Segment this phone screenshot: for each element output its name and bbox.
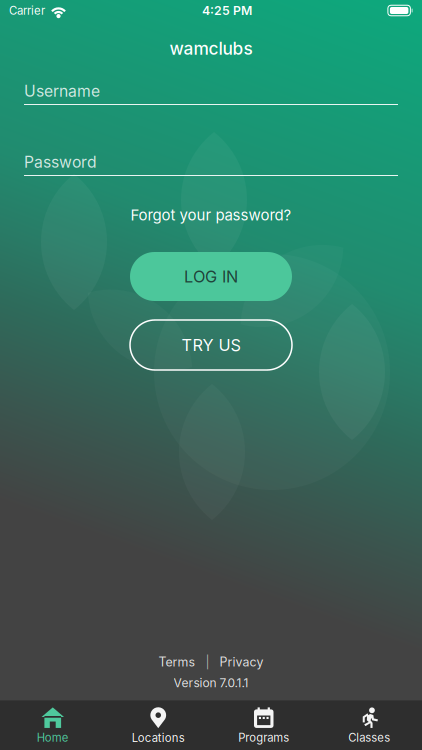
staticText: Version 7.0.1.1 [173, 676, 248, 690]
button[interactable]: Locations [105, 699, 211, 750]
button[interactable]: TRY US [130, 320, 292, 370]
button[interactable]: Privacy [215, 654, 267, 669]
staticText: Forgot your password? [130, 206, 291, 224]
staticText: Programs [238, 731, 289, 745]
staticText: wamclubs [169, 38, 252, 59]
staticText: Home [37, 731, 69, 745]
staticText: Privacy [219, 654, 263, 669]
staticText: 4:25 PM [202, 3, 252, 18]
button[interactable]: Home [0, 699, 105, 750]
staticText: Username [24, 81, 100, 100]
staticText: LOG IN [184, 267, 238, 286]
staticText: | [205, 654, 209, 669]
staticText: Carrier [9, 4, 45, 17]
button[interactable]: Terms [154, 654, 199, 669]
staticText: Password [24, 152, 97, 171]
button[interactable]: Classes [316, 699, 422, 750]
button[interactable]: Programs [211, 699, 316, 750]
staticText: Locations [132, 731, 185, 745]
button[interactable]: LOG IN [130, 252, 292, 301]
button[interactable]: Forgot your password? [118, 205, 303, 225]
staticText: Terms [158, 654, 195, 669]
staticText: TRY US [181, 335, 240, 355]
staticText: Classes [348, 731, 390, 745]
